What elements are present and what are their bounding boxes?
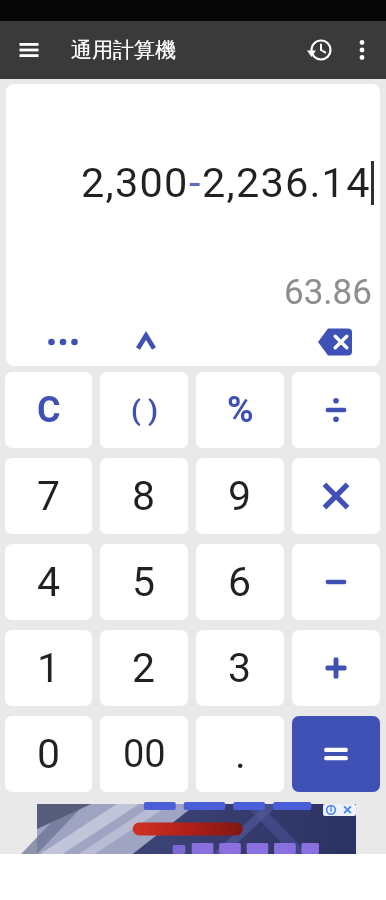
button[interactable] [346,34,378,66]
button[interactable]: 1 [5,630,92,706]
button[interactable] [37,804,356,854]
button[interactable] [126,322,166,362]
button[interactable]: 5 [100,544,188,620]
button[interactable] [12,33,46,67]
staticText: 5 [132,558,156,606]
button[interactable]: 9 [196,458,284,534]
button[interactable]: 7 [5,458,92,534]
button[interactable]: 0 [5,716,92,792]
button[interactable] [292,372,380,448]
button[interactable]: % [196,372,284,448]
button[interactable] [292,630,380,706]
button[interactable] [292,716,380,792]
button[interactable] [304,33,338,67]
staticText: 2,236.14 [202,158,371,207]
button[interactable]: 8 [100,458,188,534]
button[interactable]: 3 [196,630,284,706]
staticText: 9 [228,472,252,520]
staticText: 00 [123,732,166,777]
button[interactable]: . [196,716,284,792]
staticText: 通用計算機 [71,37,176,63]
staticText: ( [131,394,141,427]
staticText: 2,300 [81,158,189,207]
button[interactable]: 4 [5,544,92,620]
staticText: 7 [37,472,61,520]
staticText: 63.86 [284,272,372,313]
staticText: ) [148,394,158,427]
button[interactable]: 6 [196,544,284,620]
staticText: 4 [37,558,61,606]
button[interactable] [36,322,90,362]
button[interactable] [292,458,380,534]
staticText: 8 [132,472,156,520]
staticText: C [37,389,61,431]
button[interactable]: ( [100,372,188,448]
button[interactable]: 00 [100,716,188,792]
staticText: - [189,158,202,207]
staticText: 6 [228,558,252,606]
staticText: 1 [37,644,61,692]
staticText: % [227,389,254,431]
staticText: 3 [228,644,252,692]
button[interactable] [315,322,359,362]
staticText: 2 [132,644,156,692]
button[interactable]: C [5,372,92,448]
button[interactable] [292,544,380,620]
button[interactable]: 2 [100,630,188,706]
staticText: 0 [37,730,61,778]
staticText: . [235,730,246,778]
